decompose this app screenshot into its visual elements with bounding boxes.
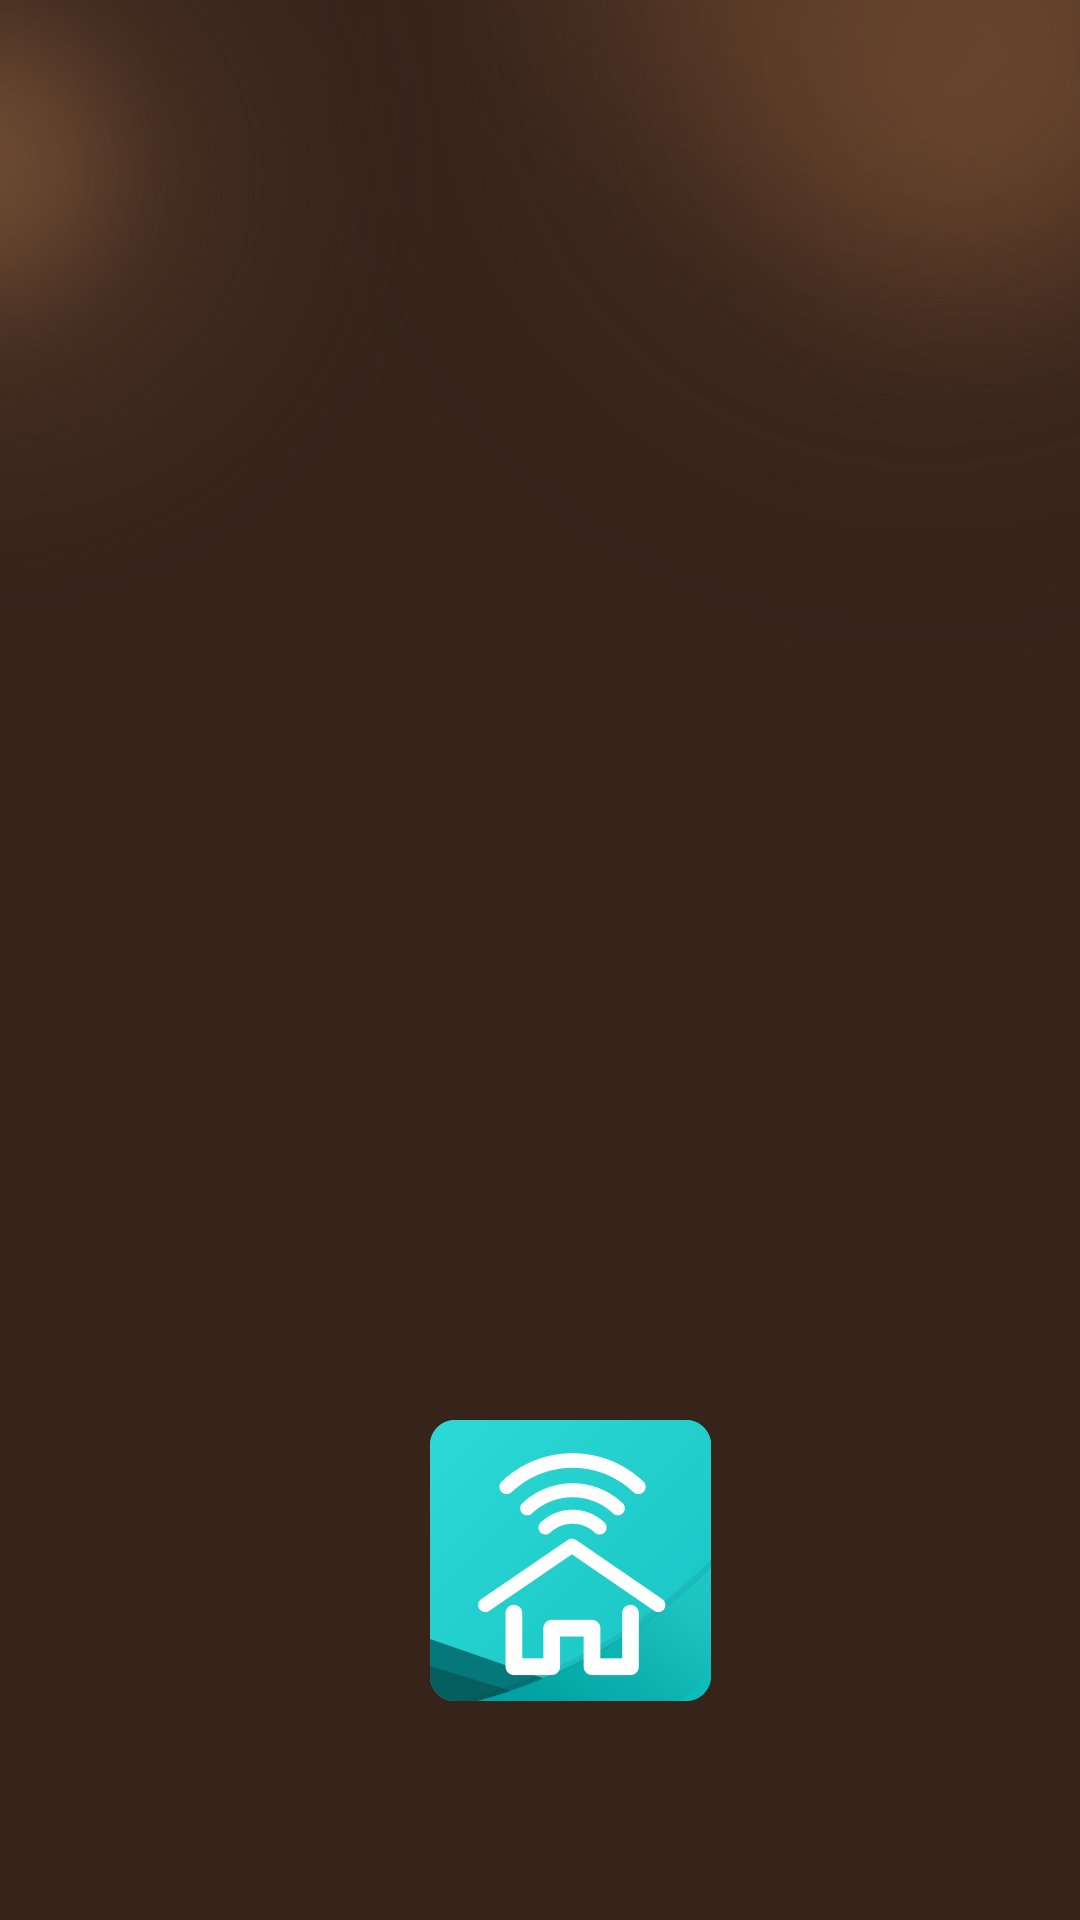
button[interactable]: Smart Home: [430, 1420, 711, 1701]
